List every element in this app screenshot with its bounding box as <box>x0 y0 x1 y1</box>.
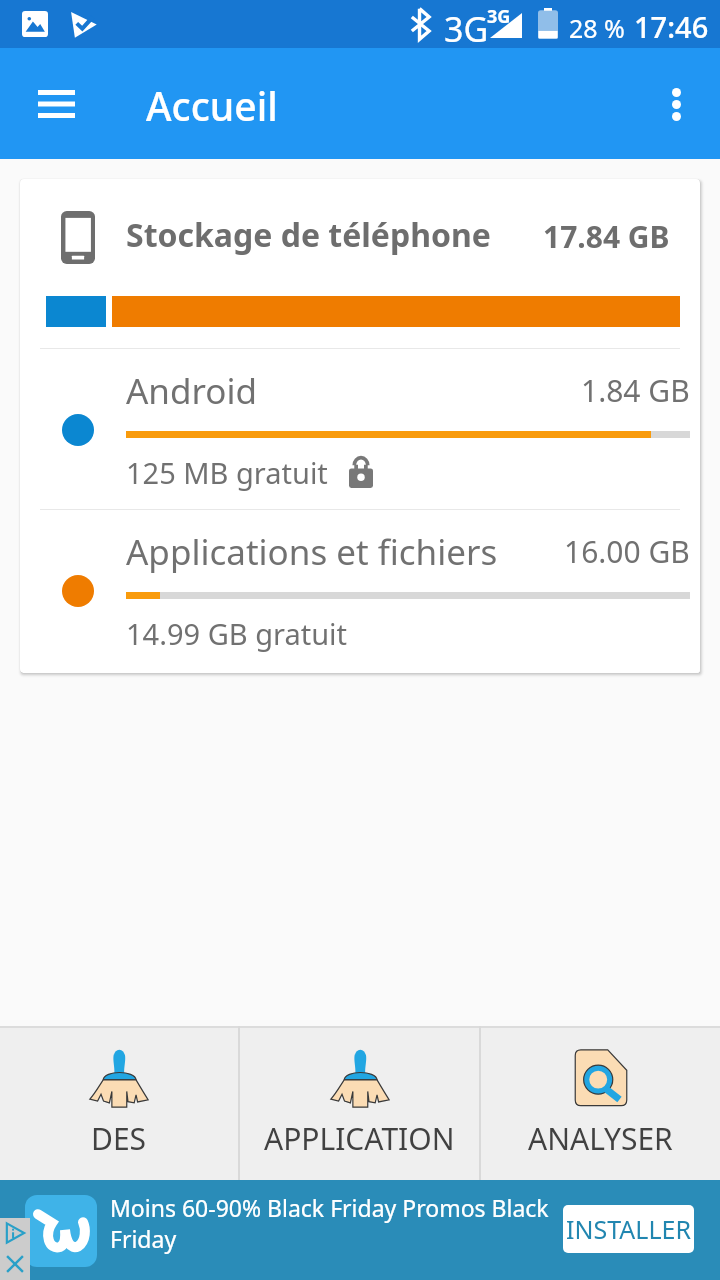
button[interactable]: ANALYSER <box>481 1026 720 1180</box>
staticText: Friday <box>110 1223 177 1254</box>
button[interactable]: Android <box>20 357 700 512</box>
staticText: 17:46 <box>634 7 709 46</box>
staticText: APPLICATION <box>264 1118 455 1159</box>
staticText: 3G <box>487 4 511 29</box>
button[interactable]: APPLICATION <box>240 1026 479 1180</box>
staticText: Accueil <box>146 79 278 132</box>
staticText: Moins 60-90% Black Friday Promos Black <box>110 1192 549 1223</box>
button[interactable]: Applications et fichiers <box>20 518 700 673</box>
staticText: INSTALLER <box>566 1212 691 1246</box>
button[interactable]: INSTALLER <box>563 1205 694 1253</box>
button[interactable]: DES <box>0 1026 238 1180</box>
staticText: 17.84 GB <box>543 216 670 257</box>
staticText: 14.99 GB gratuit <box>126 614 348 653</box>
button[interactable]: Open navigation menu <box>14 69 98 139</box>
staticText: 28 % <box>569 11 625 45</box>
button[interactable]: Stockage de téléphone <box>20 179 700 673</box>
staticText: 125 MB gratuit <box>126 453 328 492</box>
button[interactable]: Ad choices <box>0 1218 30 1248</box>
staticText: ANALYSER <box>528 1118 673 1159</box>
staticText: Applications et fichiers <box>126 528 498 576</box>
staticText: DES <box>91 1118 147 1159</box>
button[interactable]: More options <box>642 71 710 137</box>
staticText: 1.84 GB <box>581 370 690 411</box>
staticText: 16.00 GB <box>564 531 690 572</box>
staticText: 3G <box>444 6 489 52</box>
staticText: Stockage de téléphone <box>126 213 491 257</box>
staticText: Android <box>126 367 258 415</box>
button[interactable]: Wish app icon <box>25 1195 97 1267</box>
button[interactable]: Close ad <box>0 1248 30 1280</box>
